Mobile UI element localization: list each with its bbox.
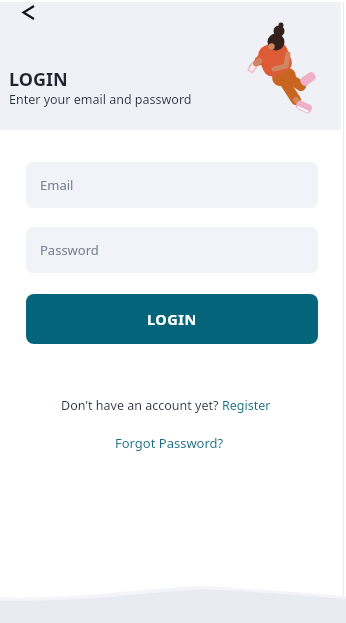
staticText: Password <box>40 241 99 259</box>
staticText: Enter your email and password <box>9 91 192 108</box>
staticText: Forgot Password? <box>115 434 224 452</box>
staticText: LOGIN <box>9 67 68 92</box>
staticText: Email <box>40 176 74 194</box>
staticText: LOGIN <box>147 309 197 329</box>
staticText: Don't have an account yet? <box>61 397 222 414</box>
staticText: Register <box>222 397 271 414</box>
